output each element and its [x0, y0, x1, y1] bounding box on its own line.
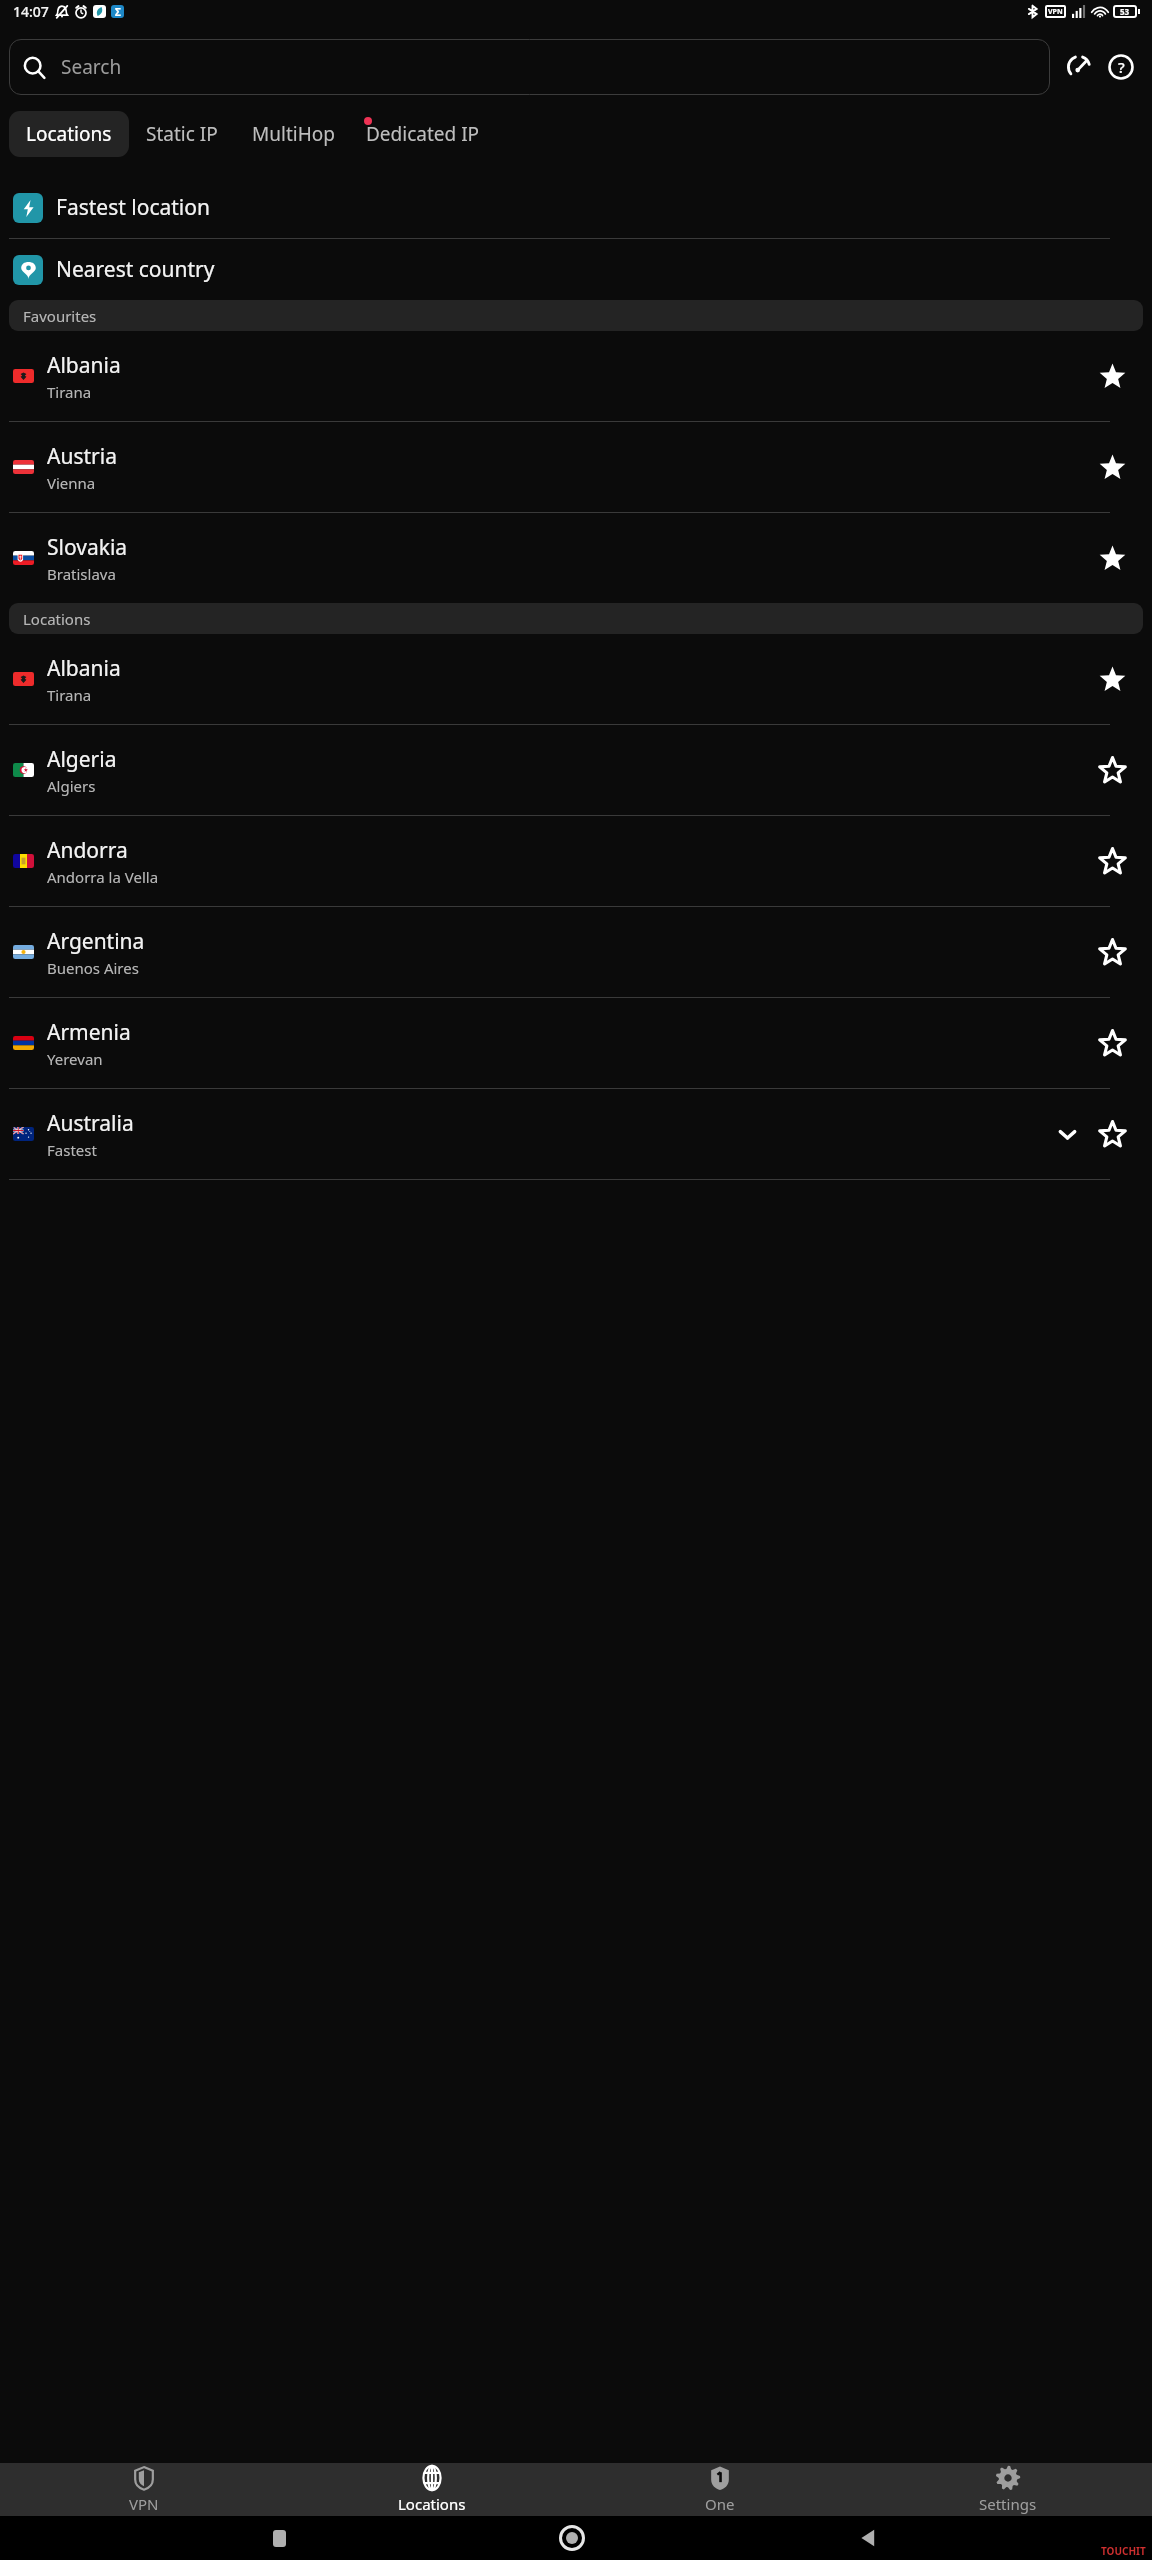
button[interactable]: Remove favourite	[1092, 538, 1132, 578]
button[interactable]: Add favourite	[1092, 1023, 1132, 1063]
staticText: Buenos Aires	[47, 958, 139, 978]
button[interactable]: Nearest country	[0, 239, 1152, 300]
staticText: Slovakia	[47, 533, 128, 562]
staticText: VPN	[1048, 7, 1063, 17]
button[interactable]: Australia	[0, 1089, 1152, 1179]
staticText: Argentina	[47, 927, 145, 956]
staticText: Australia	[47, 1109, 134, 1138]
staticText: Andorra	[47, 836, 128, 865]
button[interactable]: Add favourite	[1092, 932, 1132, 972]
button[interactable]: Austria	[0, 422, 1152, 512]
button[interactable]: Locations	[9, 111, 129, 157]
staticText: Algiers	[47, 776, 96, 796]
button[interactable]: Albania	[0, 331, 1152, 421]
button[interactable]: Add favourite	[1092, 750, 1132, 790]
staticText: One	[705, 2494, 735, 2514]
button[interactable]: Fastest location	[0, 177, 1152, 238]
button[interactable]: Andorra	[0, 816, 1152, 906]
button[interactable]: Algeria	[0, 725, 1152, 815]
button[interactable]: Dedicated IP	[352, 111, 494, 157]
button[interactable]: Speed test	[1060, 48, 1098, 86]
staticText: VPN	[129, 2494, 159, 2514]
staticText: 53	[1120, 6, 1130, 17]
staticText: Settings	[979, 2494, 1037, 2514]
button[interactable]: Back	[857, 2527, 879, 2549]
staticText: Armenia	[47, 1018, 131, 1047]
button[interactable]: Slovakia	[0, 513, 1152, 603]
staticText: Locations	[26, 121, 112, 147]
staticText: Static IP	[146, 121, 218, 147]
staticText: Dedicated IP	[366, 121, 480, 147]
button[interactable]: MultiHop	[235, 111, 352, 157]
button[interactable]: Remove favourite	[1092, 356, 1132, 396]
staticText: Vienna	[47, 473, 96, 493]
button[interactable]: Home	[559, 2525, 585, 2551]
staticText: Favourites	[23, 306, 97, 326]
staticText: Yerevan	[47, 1049, 103, 1069]
button[interactable]: Static IP	[129, 111, 235, 157]
staticText: Bratislava	[47, 564, 116, 584]
staticText: Tirana	[47, 382, 92, 402]
button[interactable]: Add favourite	[1092, 1114, 1132, 1154]
button[interactable]: Armenia	[0, 998, 1152, 1088]
button[interactable]: Help	[1102, 48, 1140, 86]
staticText: ?	[1118, 57, 1125, 77]
staticText: Locations	[23, 609, 91, 629]
staticText: Albania	[47, 654, 121, 683]
button[interactable]: Settings	[864, 2463, 1152, 2516]
button[interactable]: Add favourite	[1092, 841, 1132, 881]
staticText: Locations	[398, 2494, 466, 2514]
button[interactable]: Search	[9, 39, 1050, 95]
button[interactable]: Expand	[1050, 1117, 1084, 1151]
button[interactable]: Albania	[0, 634, 1152, 724]
staticText: Algeria	[47, 745, 117, 774]
staticText: 14:07	[13, 2, 49, 21]
staticText: Tirana	[47, 685, 92, 705]
staticText: Albania	[47, 351, 121, 380]
button[interactable]: VPN	[0, 2463, 288, 2516]
staticText: Fastest location	[56, 193, 210, 222]
staticText: Search	[61, 54, 122, 80]
button[interactable]: Recents	[273, 2530, 286, 2547]
staticText: Σ	[115, 5, 121, 18]
staticText: Fastest	[47, 1140, 97, 1160]
button[interactable]: Argentina	[0, 907, 1152, 997]
button[interactable]: One	[576, 2463, 864, 2516]
staticText: Nearest country	[56, 255, 215, 284]
staticText: Austria	[47, 442, 117, 471]
button[interactable]: Locations	[288, 2463, 576, 2516]
button[interactable]: Remove favourite	[1092, 447, 1132, 487]
staticText: MultiHop	[252, 121, 335, 147]
button[interactable]: Remove favourite	[1092, 659, 1132, 699]
staticText: TOUCHIT	[1101, 2544, 1146, 2558]
staticText: Andorra la Vella	[47, 867, 159, 887]
